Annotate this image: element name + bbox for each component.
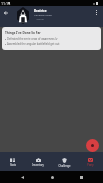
button[interactable]: Back xyxy=(17,172,28,183)
staticText: Things I've Done So Far xyxy=(5,31,41,35)
button[interactable]: Things I've Done So Far xyxy=(2,27,101,50)
button[interactable]: Stats xyxy=(0,152,25,171)
staticText: Defeated the eerie crow of awareness lv xyxy=(7,37,58,41)
staticText: 11:13 xyxy=(1,1,11,6)
staticText: Inventory xyxy=(32,163,44,167)
staticText: Beatrice xyxy=(34,9,47,13)
staticText: Challenge xyxy=(58,164,71,168)
staticText: Assembled the angular battlefield get ou… xyxy=(7,42,60,46)
button[interactable]: Back xyxy=(1,8,10,17)
button[interactable]: Challenge xyxy=(51,152,77,171)
button[interactable]: More options xyxy=(92,8,101,17)
button[interactable]: Add task xyxy=(86,139,99,152)
button[interactable]: Party xyxy=(77,152,103,171)
staticText: Stats xyxy=(10,163,16,167)
button[interactable]: Recent apps xyxy=(76,172,87,183)
staticText: NECROMANCER xyxy=(34,13,52,16)
button[interactable]: Inventory xyxy=(25,152,51,171)
button[interactable]: Home xyxy=(47,172,58,183)
staticText: Owner xyxy=(34,17,45,20)
staticText: Party xyxy=(87,163,94,167)
